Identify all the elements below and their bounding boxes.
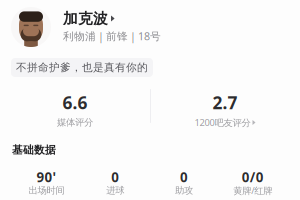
staticText: 2.7 [212,91,237,114]
button[interactable]: 2.7 [150,95,300,127]
staticText: 助攻 [175,185,193,196]
button[interactable]: 加克波 [63,12,115,25]
staticText: 出场时间 [28,185,64,196]
staticText: 利物浦 | 前锋 | 18号 [63,29,161,43]
staticText: 不拼命护爹，也是真有你的 [16,61,148,74]
button[interactable]: 6.6 [0,95,150,127]
staticText: 1200吧友评分 [194,116,250,129]
staticText: 加克波 [63,9,108,27]
staticText: 6.6 [62,91,87,114]
staticText: 0 [180,168,188,186]
staticText: 0/0 [242,168,264,186]
staticText: 媒体评分 [57,117,93,128]
staticText: 0 [111,168,119,186]
staticText: 进球 [106,185,124,196]
staticText: 基础数据 [12,143,56,156]
button[interactable]: 球员头像 [11,7,51,47]
staticText: 黄牌/红牌 [233,184,272,197]
staticText: 90' [36,168,56,186]
